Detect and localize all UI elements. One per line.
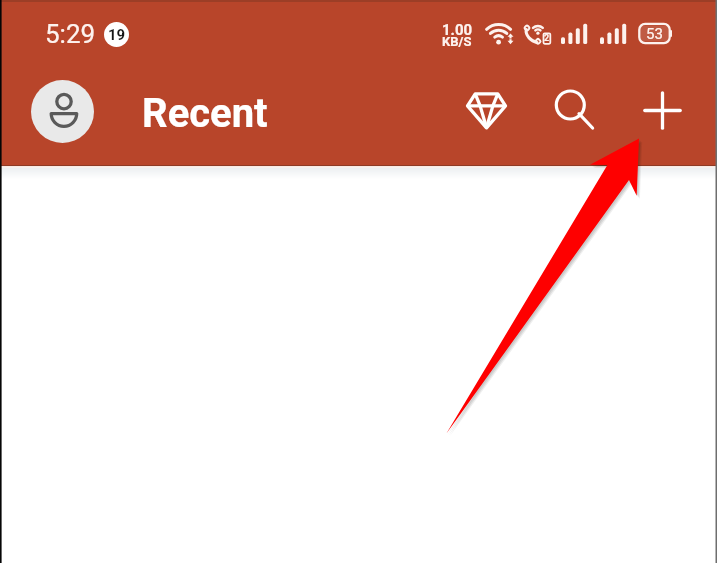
- staticText: Recent: [142, 90, 268, 137]
- staticText: 5:29: [45, 19, 96, 49]
- staticText: 53: [646, 25, 663, 43]
- button[interactable]: Premium: [458, 82, 514, 138]
- staticText: 19: [108, 26, 126, 44]
- staticText: KB/S: [442, 34, 472, 49]
- staticText: 2: [544, 33, 550, 44]
- button[interactable]: Add: [634, 82, 690, 138]
- button[interactable]: Account: [31, 80, 94, 143]
- button[interactable]: Search: [548, 83, 604, 139]
- staticText: 1.00: [442, 21, 473, 39]
